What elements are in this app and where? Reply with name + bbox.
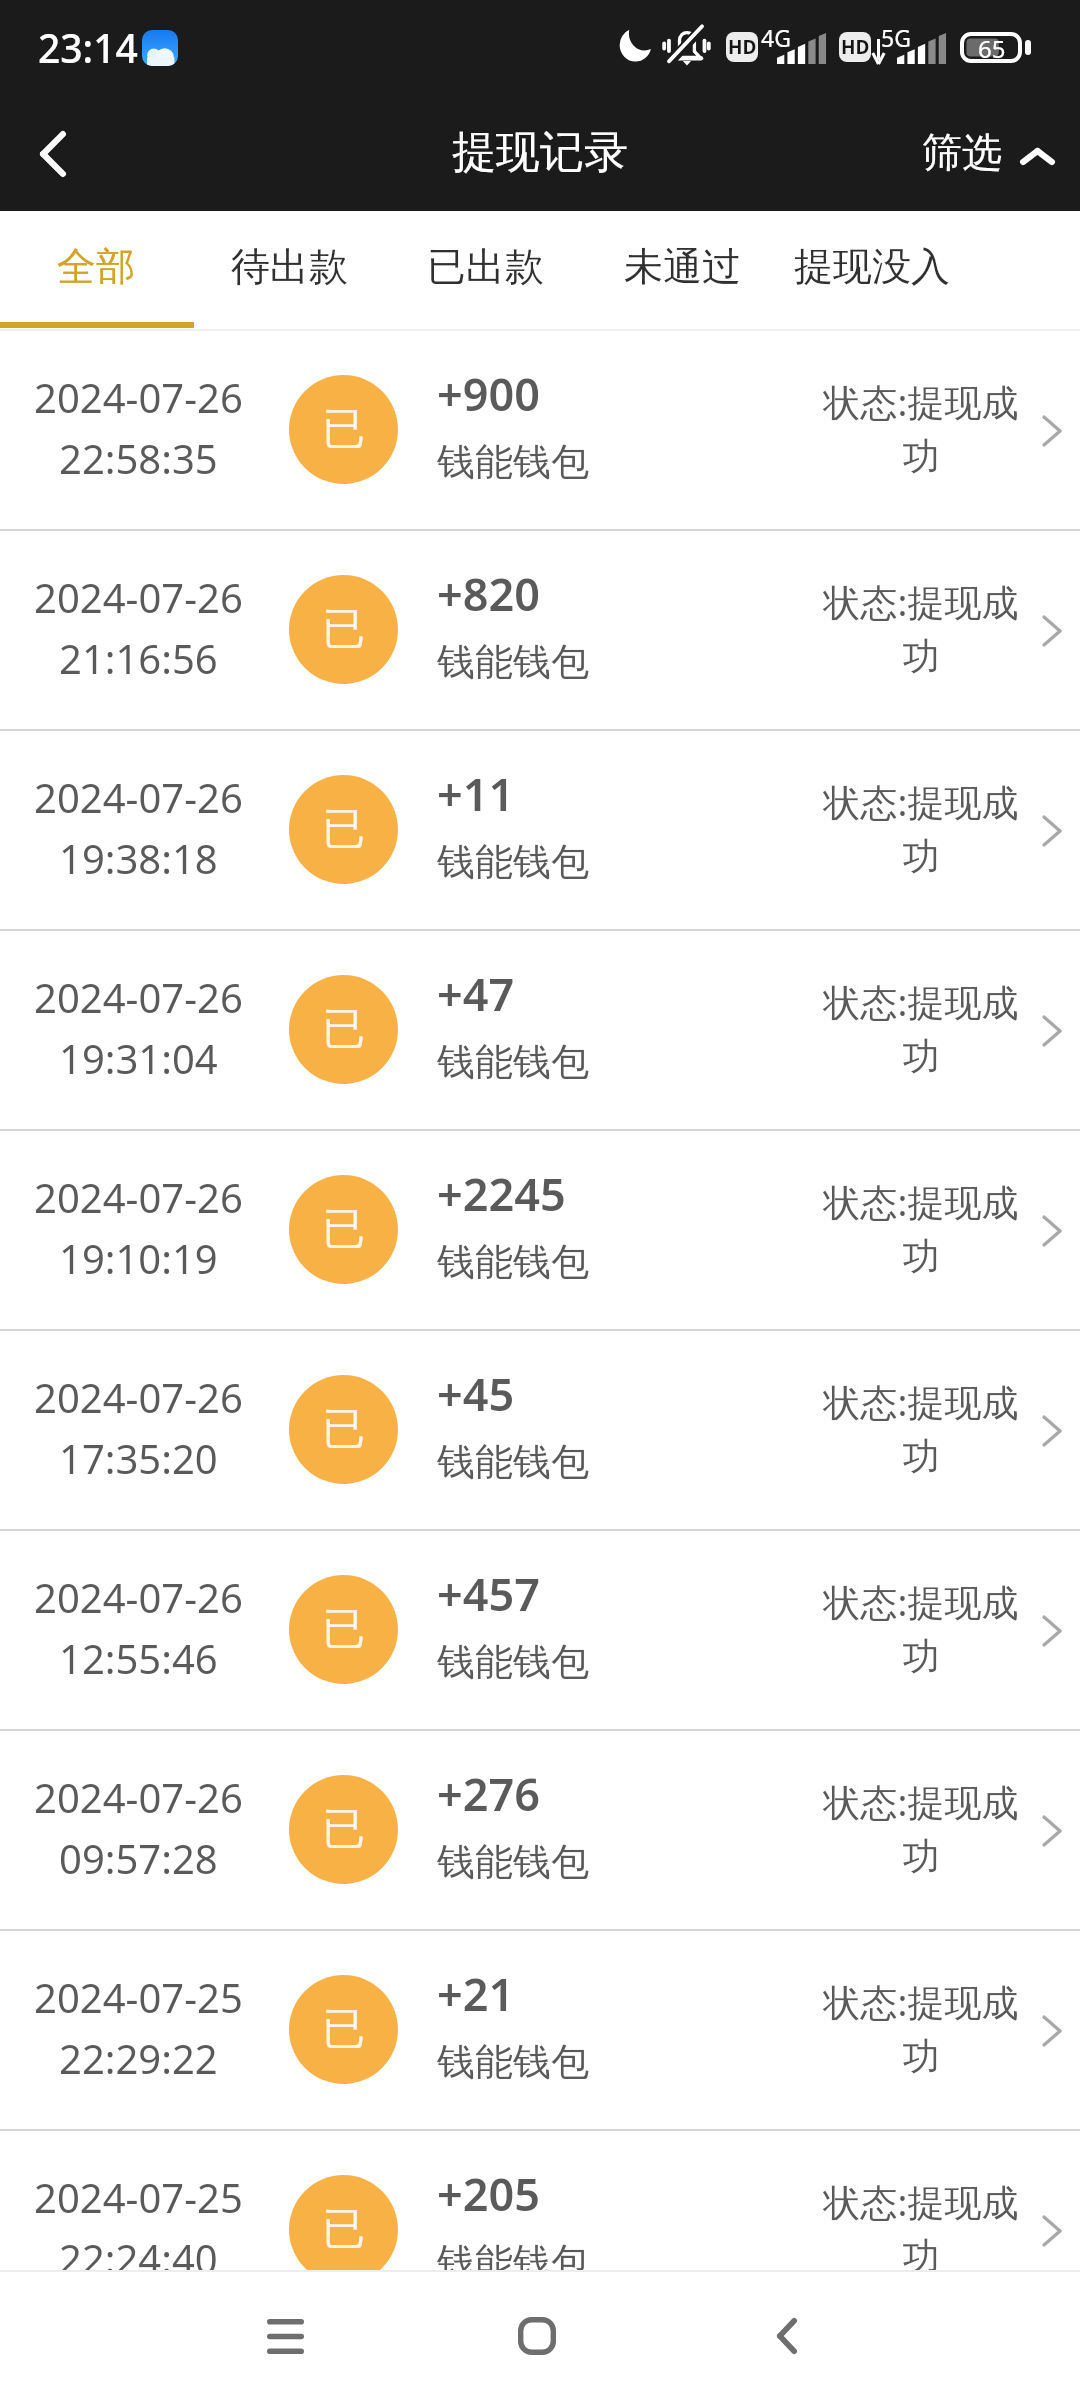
button[interactable]: 2024-07-26 xyxy=(0,1531,1080,1731)
button[interactable]: 2024-07-25 xyxy=(0,2131,1080,2272)
button[interactable]: Back xyxy=(727,2276,847,2396)
staticText: 5G xyxy=(881,22,911,53)
staticText: +900 xyxy=(437,363,540,424)
staticText: +21 xyxy=(437,1963,515,2024)
staticText: 2024-07-26 xyxy=(34,770,243,824)
staticText: 2024-07-26 xyxy=(34,370,243,424)
staticText: 已 xyxy=(322,2202,365,2256)
staticText: +47 xyxy=(437,963,515,1024)
staticText: +45 xyxy=(437,1363,515,1424)
staticText: 状态:提现成功 xyxy=(818,776,1024,880)
staticText: +276 xyxy=(437,1763,540,1824)
staticText: 2024-07-26 xyxy=(34,570,243,624)
staticText: +205 xyxy=(437,2163,540,2224)
staticText: 状态:提现成功 xyxy=(818,376,1024,480)
staticText: 12:55:46 xyxy=(59,1631,218,1685)
staticText: 19:31:04 xyxy=(59,1031,218,1085)
staticText: 已出款 xyxy=(427,242,544,291)
staticText: +11 xyxy=(437,763,515,824)
button[interactable]: 2024-07-26 xyxy=(0,331,1080,531)
staticText: +2245 xyxy=(437,1163,566,1224)
staticText: 状态:提现成功 xyxy=(818,976,1024,1080)
button[interactable]: 2024-07-25 xyxy=(0,1931,1080,2131)
staticText: 状态:提现成功 xyxy=(818,1776,1024,1880)
staticText: 钱能钱包 xyxy=(437,1038,589,1086)
staticText: 22:58:35 xyxy=(59,431,218,485)
button[interactable]: 提现没入 xyxy=(778,211,966,331)
staticText: 2024-07-26 xyxy=(34,1770,243,1824)
button[interactable]: 2024-07-26 xyxy=(0,531,1080,731)
staticText: +457 xyxy=(437,1563,540,1624)
staticText: 钱能钱包 xyxy=(437,1838,589,1886)
staticText: 钱能钱包 xyxy=(437,638,589,686)
staticText: 状态:提现成功 xyxy=(818,1176,1024,1280)
staticText: 已 xyxy=(322,802,365,856)
button[interactable]: 未通过 xyxy=(608,211,757,331)
staticText: 提现记录 xyxy=(452,125,628,180)
staticText: 已 xyxy=(322,402,365,456)
staticText: 状态:提现成功 xyxy=(818,576,1024,680)
staticText: 2024-07-26 xyxy=(34,1570,243,1624)
staticText: HD xyxy=(841,34,870,60)
staticText: 已 xyxy=(322,1402,365,1456)
button[interactable]: 2024-07-26 xyxy=(0,1131,1080,1331)
staticText: 已 xyxy=(322,602,365,656)
staticText: 钱能钱包 xyxy=(437,1238,589,1286)
staticText: 已 xyxy=(322,2002,365,2056)
button[interactable]: 已出款 xyxy=(411,211,560,331)
button[interactable]: 全部 xyxy=(41,211,151,331)
staticText: 2024-07-26 xyxy=(34,970,243,1024)
staticText: 已 xyxy=(322,1602,365,1656)
button[interactable]: 2024-07-26 xyxy=(0,1331,1080,1531)
staticText: 21:16:56 xyxy=(59,631,218,685)
staticText: 状态:提现成功 xyxy=(818,1976,1024,2080)
staticText: 钱能钱包 xyxy=(437,1438,589,1486)
staticText: 65 xyxy=(978,32,1006,63)
staticText: 状态:提现成功 xyxy=(818,1576,1024,1680)
staticText: 未通过 xyxy=(624,242,741,291)
staticText: 已 xyxy=(322,1202,365,1256)
button[interactable]: Home xyxy=(477,2276,597,2396)
staticText: 已 xyxy=(322,1002,365,1056)
staticText: 2024-07-26 xyxy=(34,1170,243,1224)
staticText: 17:35:20 xyxy=(59,1431,218,1485)
button[interactable]: 2024-07-26 xyxy=(0,931,1080,1131)
staticText: 已 xyxy=(322,1802,365,1856)
staticText: 22:24:40 xyxy=(59,2231,218,2272)
staticText: 钱能钱包 xyxy=(437,1638,589,1686)
button[interactable]: 2024-07-26 xyxy=(0,1731,1080,1931)
staticText: 状态:提现成功 xyxy=(818,1376,1024,1480)
staticText: 待出款 xyxy=(231,242,348,291)
staticText: 2024-07-25 xyxy=(34,1970,243,2024)
staticText: 钱能钱包 xyxy=(437,2238,589,2272)
button[interactable]: 筛选 xyxy=(902,96,1080,211)
staticText: 提现没入 xyxy=(794,242,950,291)
staticText: 19:10:19 xyxy=(59,1231,218,1285)
staticText: 4G xyxy=(761,22,791,53)
staticText: 全部 xyxy=(57,242,135,291)
button[interactable]: Recent apps xyxy=(225,2276,345,2396)
staticText: 2024-07-25 xyxy=(34,2170,243,2224)
staticText: 23:14 xyxy=(38,21,138,74)
staticText: 19:38:18 xyxy=(59,831,218,885)
staticText: 22:29:22 xyxy=(59,2031,218,2085)
staticText: 09:57:28 xyxy=(59,1831,218,1885)
staticText: 筛选 xyxy=(922,127,1002,177)
staticText: +820 xyxy=(437,563,540,624)
staticText: 钱能钱包 xyxy=(437,2038,589,2086)
staticText: 钱能钱包 xyxy=(437,838,589,886)
staticText: 2024-07-26 xyxy=(34,1370,243,1424)
button[interactable]: 待出款 xyxy=(215,211,364,331)
staticText: HD xyxy=(728,34,757,60)
staticText: 钱能钱包 xyxy=(437,438,589,486)
staticText: 状态:提现成功 xyxy=(818,2176,1024,2272)
button[interactable]: Back xyxy=(0,96,108,211)
button[interactable]: 2024-07-26 xyxy=(0,731,1080,931)
